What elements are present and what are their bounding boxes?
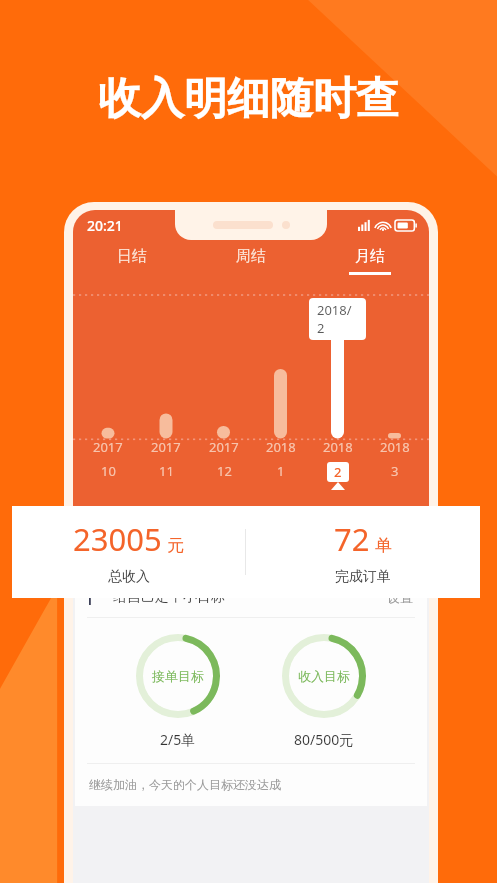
staticText: 11	[159, 462, 174, 480]
staticText: 收入目标	[298, 668, 350, 684]
staticText: 10	[101, 462, 116, 480]
staticText: 2	[334, 463, 342, 481]
button[interactable]: 周结	[191, 240, 310, 282]
staticText: 1	[277, 462, 285, 480]
button[interactable]: 23005	[12, 506, 245, 598]
button[interactable]: 日结	[73, 240, 191, 282]
staticText: 月结	[355, 247, 385, 266]
button[interactable]: 月结	[310, 240, 429, 282]
staticText: 3	[391, 462, 399, 480]
staticText: 完成订单	[335, 568, 391, 586]
staticText: 2017	[151, 438, 181, 456]
staticText: 元	[167, 535, 184, 556]
staticText: 继续加油，今天的个人目标还没达成	[89, 777, 281, 792]
staticText: 2017	[209, 438, 239, 456]
button[interactable]: 接单目标	[136, 634, 220, 749]
staticText: 接单目标	[152, 668, 204, 684]
staticText: 2018	[323, 438, 353, 456]
staticText: 总收入	[108, 568, 150, 586]
staticText: 2018	[266, 438, 296, 456]
button[interactable]: 收入目标	[282, 634, 366, 749]
staticText: 2018/2	[317, 301, 358, 337]
button[interactable]: 72	[246, 506, 480, 598]
staticText: 周结	[236, 247, 266, 266]
staticText: 2018	[380, 438, 410, 456]
staticText: 给自己定个小目标	[113, 588, 225, 606]
staticText: 日结	[117, 247, 147, 266]
staticText: 单	[375, 535, 392, 556]
staticText: 20:21	[87, 216, 123, 235]
button[interactable]: 给自己定个小目标	[75, 577, 427, 617]
staticText: 收入明细随时查	[98, 72, 399, 126]
staticText: 2017	[93, 438, 123, 456]
staticText: 23005	[73, 518, 162, 560]
staticText: 2/5单	[160, 730, 196, 749]
staticText: 设置	[387, 589, 413, 605]
staticText: 12	[217, 462, 232, 480]
staticText: 72	[334, 518, 370, 560]
staticText: 80/500元	[294, 730, 354, 749]
